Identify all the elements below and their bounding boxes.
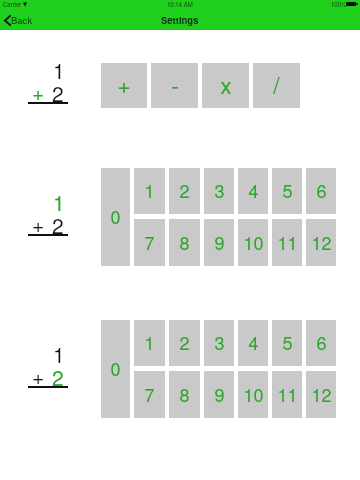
staticText: 4 — [248, 177, 259, 203]
staticText: 1 — [144, 329, 155, 355]
staticText: 1 — [53, 187, 65, 217]
staticText: 5 — [282, 329, 293, 355]
button[interactable]: 9 — [204, 219, 234, 266]
staticText: 10 — [243, 381, 264, 407]
button[interactable]: - — [151, 63, 198, 108]
other: Wi-Fi — [23, 2, 27, 7]
button[interactable]: 0 — [101, 168, 130, 266]
button[interactable]: 4 — [238, 168, 268, 214]
staticText: + — [32, 77, 45, 107]
staticText: 9 — [214, 229, 225, 255]
staticText: 3 — [214, 177, 225, 203]
staticText: 10 — [243, 229, 264, 255]
staticText: 100% — [331, 0, 347, 9]
button[interactable]: 3 — [204, 168, 234, 214]
button[interactable]: 8 — [169, 219, 200, 266]
staticText: 0 — [110, 355, 121, 381]
staticText: - — [171, 68, 179, 101]
staticText: 6 — [316, 177, 327, 203]
button[interactable]: 5 — [272, 168, 302, 214]
button[interactable]: 1 — [134, 320, 165, 366]
staticText: 2 — [179, 177, 190, 203]
staticText: 0 — [110, 203, 121, 229]
staticText: / — [273, 68, 280, 101]
staticText: 7 — [144, 381, 155, 407]
button[interactable]: / — [253, 63, 300, 108]
button[interactable]: 5 — [272, 320, 302, 366]
staticText: 2 — [179, 329, 190, 355]
staticText: 7 — [144, 229, 155, 255]
button[interactable]: 1 — [134, 168, 165, 214]
staticText: 2 — [52, 210, 64, 240]
button[interactable]: Back — [1, 12, 37, 28]
staticText: 8 — [179, 229, 190, 255]
staticText: 1 — [53, 55, 65, 85]
staticText: 6 — [316, 329, 327, 355]
button[interactable]: 3 — [204, 320, 234, 366]
button[interactable]: 6 — [306, 320, 336, 366]
staticText: 9 — [214, 381, 225, 407]
staticText: Settings — [161, 13, 199, 27]
button[interactable]: 7 — [134, 219, 165, 266]
staticText: 2 — [52, 362, 64, 392]
button[interactable]: x — [202, 63, 249, 108]
button[interactable]: 10 — [238, 371, 268, 418]
button[interactable]: 11 — [272, 219, 302, 266]
staticText: 1 — [53, 339, 65, 369]
button[interactable]: 9 — [204, 371, 234, 418]
staticText: 12 — [311, 229, 332, 255]
button[interactable]: 0 — [101, 320, 130, 418]
staticText: 4 — [248, 329, 259, 355]
staticText: 8 — [179, 381, 190, 407]
staticText: 12 — [311, 381, 332, 407]
button[interactable]: 12 — [306, 371, 336, 418]
staticText: 10:14 AM — [167, 0, 193, 9]
staticText: 5 — [282, 177, 293, 203]
button[interactable]: 10 — [238, 219, 268, 266]
staticText: + — [32, 361, 45, 391]
other: Battery full — [346, 2, 358, 6]
staticText: 3 — [214, 329, 225, 355]
button[interactable]: 8 — [169, 371, 200, 418]
button[interactable]: 7 — [134, 371, 165, 418]
staticText: 2 — [52, 78, 64, 108]
staticText: + — [32, 209, 45, 239]
button[interactable]: 2 — [169, 320, 200, 366]
button[interactable]: 6 — [306, 168, 336, 214]
button[interactable]: 11 — [272, 371, 302, 418]
staticText: + — [117, 68, 131, 101]
staticText: Back — [11, 13, 33, 27]
button[interactable]: + — [101, 63, 147, 108]
staticText: 1 — [144, 177, 155, 203]
staticText: 11 — [277, 229, 298, 255]
button[interactable]: 12 — [306, 219, 336, 266]
staticText: 11 — [277, 381, 298, 407]
button[interactable]: 4 — [238, 320, 268, 366]
staticText: Carrier — [3, 0, 22, 9]
button[interactable]: 2 — [169, 168, 200, 214]
staticText: x — [220, 68, 232, 101]
